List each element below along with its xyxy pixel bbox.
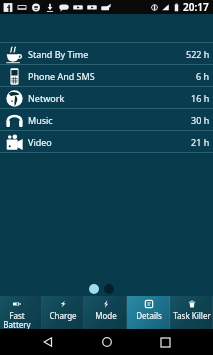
button[interactable]: Network [0,87,213,109]
staticText: Phone And SMS [28,70,95,82]
button[interactable]: Stand By Time [0,43,213,65]
button[interactable]: Mode [84,296,127,329]
button[interactable]: Phone And SMS [0,65,213,87]
staticText: Stand By Time [28,48,89,60]
staticText: 21 h [191,136,210,148]
staticText: Video [28,136,52,148]
staticText: 6 h [196,70,210,82]
staticText: Charge [49,310,77,321]
staticText: 522 h [186,48,210,60]
staticText: 30 h [191,114,210,126]
button[interactable]: Music [0,109,213,131]
button[interactable]: Details [127,296,170,329]
button[interactable]: Recent apps [154,331,176,353]
staticText: Network [28,92,65,104]
staticText: Mode [95,310,117,321]
staticText: Fast Battery [3,310,31,329]
button[interactable]: Video [0,131,213,153]
button[interactable]: Home [96,331,118,353]
button[interactable]: Fast Battery [0,296,42,329]
button[interactable]: Charge [42,296,84,329]
button[interactable]: Page 1 [89,284,99,294]
staticText: 16 h [191,92,210,104]
button[interactable]: Page 2 [104,284,114,294]
button[interactable]: Back [37,331,59,353]
staticText: Task Killer [173,310,211,321]
staticText: 20:17 [183,0,209,14]
staticText: Details [136,310,162,321]
button[interactable]: Task Killer [170,296,213,329]
staticText: Music [28,114,53,126]
